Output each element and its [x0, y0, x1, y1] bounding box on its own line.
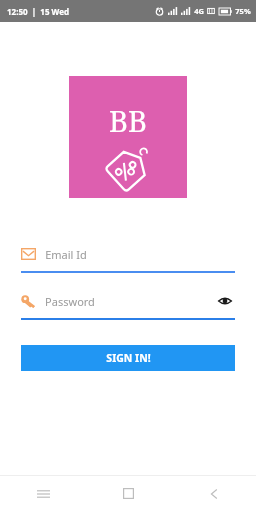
staticText: Password	[45, 294, 95, 309]
button[interactable]: Password	[21, 289, 235, 320]
button[interactable]: Back	[171, 475, 256, 512]
button[interactable]: Recents	[0, 475, 86, 512]
staticText: Email Id	[45, 247, 87, 262]
other: Password	[21, 295, 36, 308]
other: Email	[21, 248, 36, 260]
staticText: 75%	[235, 6, 251, 16]
staticText: 12:50 | 15 Wed	[7, 6, 69, 17]
staticText: SIGN IN!	[106, 351, 151, 365]
button[interactable]: SIGN IN!	[21, 345, 235, 371]
button[interactable]: Email	[21, 242, 235, 273]
button[interactable]: Home	[86, 475, 171, 512]
button[interactable]: Show password	[215, 291, 235, 311]
staticText: 4G	[194, 6, 204, 16]
staticText: BB	[109, 101, 147, 140]
